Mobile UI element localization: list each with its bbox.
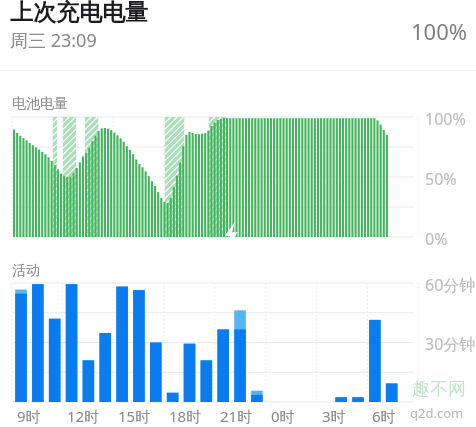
staticText: 100% [411, 16, 468, 46]
staticText: 15时 [118, 406, 151, 426]
staticText: 3时 [322, 406, 346, 426]
staticText: 12时 [67, 406, 100, 426]
staticText: 30分钟 [425, 333, 476, 355]
staticText: 9时 [17, 406, 41, 426]
staticText: 100% [425, 108, 466, 130]
staticText: 60分钟 [425, 274, 476, 296]
staticText: 6时 [372, 406, 396, 426]
staticText: 活动 [12, 262, 40, 280]
staticText: 0% [425, 228, 448, 250]
staticText: q2d.com [410, 404, 464, 422]
staticText: 18时 [169, 406, 202, 426]
staticText: 周三 23:09 [10, 28, 97, 53]
staticText: 21时 [220, 406, 253, 426]
staticText: 上次充电电量 [10, 0, 148, 27]
staticText: 0时 [271, 406, 295, 426]
staticText: 50% [425, 168, 457, 190]
staticText: 电池电量 [12, 95, 68, 113]
staticText: 趣不网 [412, 378, 466, 401]
